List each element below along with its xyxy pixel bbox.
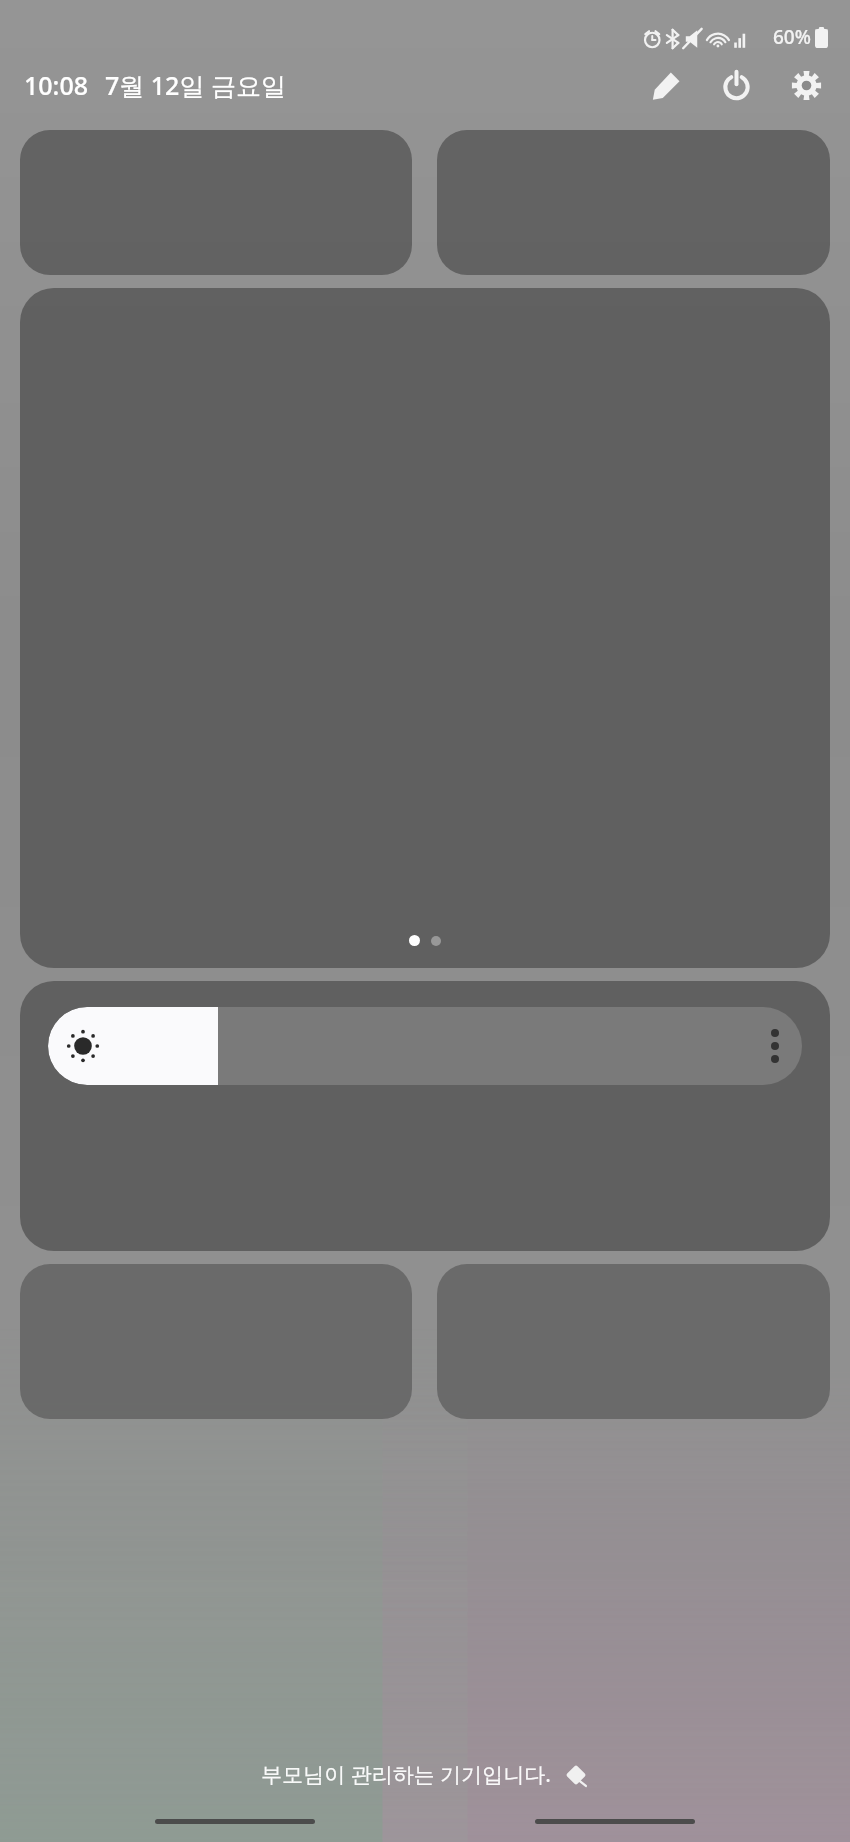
staticText: 부모님이 관리하는 기기입니다. [261,1760,551,1789]
staticText: 60% [773,24,811,50]
button[interactable]: Quick setting tile 1 [20,130,412,275]
button[interactable]: Power [712,61,760,109]
button[interactable]: Brightness [48,1007,802,1085]
staticText: 7월 12일 금요일 [105,68,286,102]
button[interactable]: Settings [782,61,830,109]
button[interactable]: Tile 4 [437,1264,830,1419]
button[interactable]: Brightness options [748,1007,802,1085]
staticText: 10:08 [24,68,89,102]
button[interactable]: Edit [642,61,690,109]
button[interactable]: Quick setting tile 2 [437,130,830,275]
button[interactable]: 부모님이 관리하는 기기입니다. [0,1752,850,1797]
button[interactable]: Tile 3 [20,1264,412,1419]
